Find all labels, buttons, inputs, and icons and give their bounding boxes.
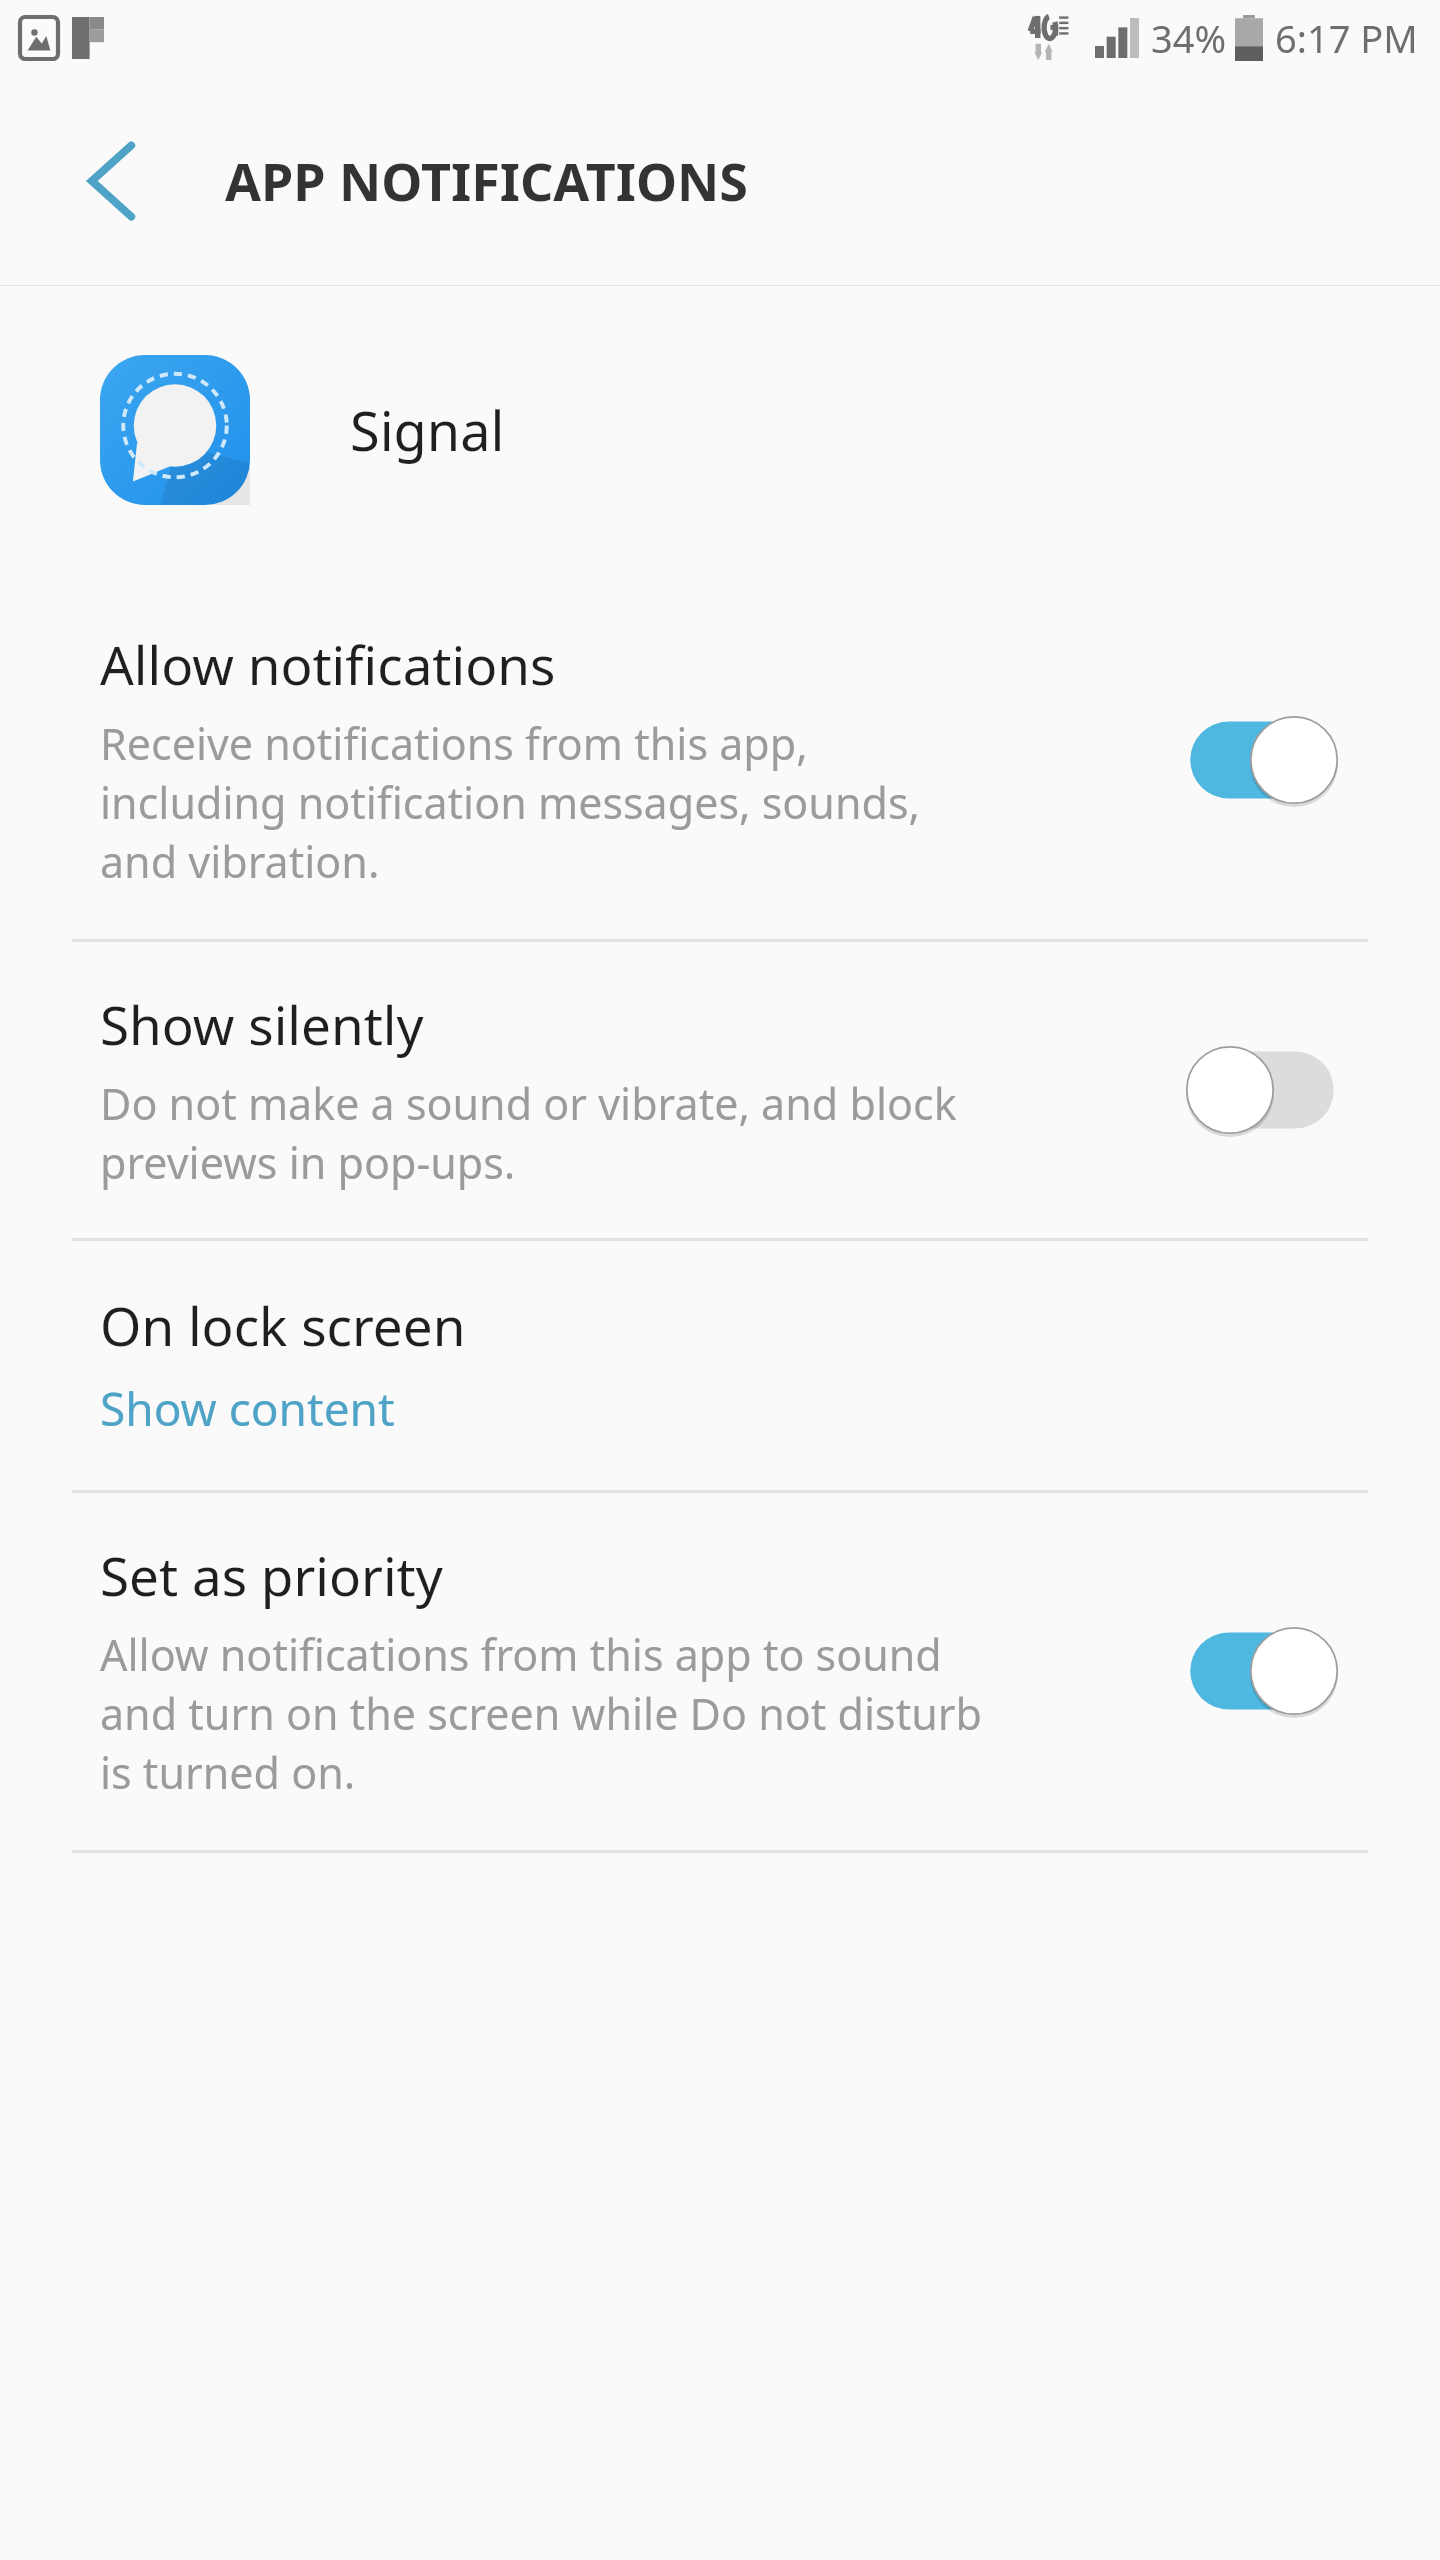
staticText: Allow notifications from this app to sou…: [100, 1625, 942, 1684]
button[interactable]: Back: [58, 127, 166, 235]
staticText: and vibration.: [100, 832, 380, 891]
staticText: previews in pop-ups.: [100, 1133, 516, 1192]
button[interactable]: Signal: [0, 286, 1440, 574]
staticText: is turned on.: [100, 1743, 356, 1802]
staticText: including notification messages, sounds,: [100, 773, 921, 832]
staticText: Show silently: [100, 988, 424, 1060]
button[interactable]: Set as priority: [0, 1493, 1440, 1850]
staticText: APP NOTIFICATIONS: [225, 145, 748, 216]
button[interactable]: Toggle on: [1184, 712, 1340, 808]
button[interactable]: Allow notifications: [0, 574, 1440, 939]
staticText: Signal: [350, 393, 505, 467]
staticText: 34%: [1151, 12, 1227, 64]
staticText: 6:17 PM: [1275, 12, 1418, 64]
button[interactable]: Show silently: [0, 942, 1440, 1238]
staticText: Allow notifications: [100, 628, 556, 700]
button[interactable]: Toggle off: [1184, 1042, 1340, 1138]
staticText: Receive notifications from this app,: [100, 714, 808, 773]
button[interactable]: On lock screen: [0, 1241, 1440, 1490]
staticText: Show content: [100, 1377, 395, 1440]
staticText: and turn on the screen while Do not dist…: [100, 1684, 982, 1743]
staticText: Do not make a sound or vibrate, and bloc…: [100, 1074, 957, 1133]
staticText: Set as priority: [100, 1539, 443, 1611]
button[interactable]: Toggle on: [1184, 1623, 1340, 1719]
staticText: On lock screen: [100, 1289, 466, 1361]
